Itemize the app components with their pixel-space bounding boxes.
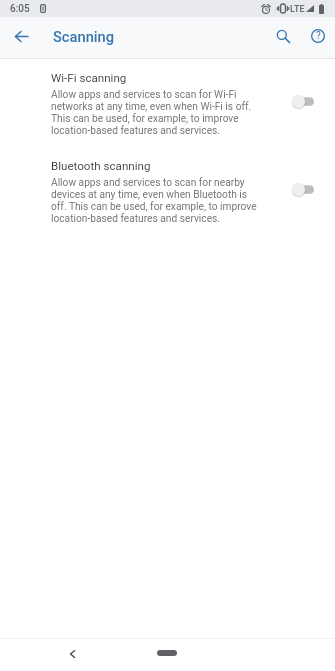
button[interactable]: Home [157,650,177,656]
staticText: Bluetooth scanning [51,148,151,176]
button[interactable]: Bluetooth scanning [0,148,335,224]
button[interactable]: Toggle Wi-Fi scanning [291,91,314,112]
button[interactable]: Toggle Bluetooth scanning [291,179,314,200]
staticText: Wi-Fi scanning [51,60,127,88]
button[interactable]: Search [264,17,302,55]
staticText: Scanning [53,28,115,45]
button[interactable]: Help [299,17,335,55]
staticText: Allow apps and services to scan for near… [51,176,262,224]
staticText: ? [316,30,321,42]
button[interactable]: Wi-Fi scanning [0,60,335,136]
staticText: Allow apps and services to scan for Wi-F… [51,88,262,136]
button[interactable]: Navigate up [2,17,40,55]
staticText: LTE [290,4,305,15]
button[interactable]: Back [60,642,84,666]
staticText: 6:05 [10,3,30,15]
